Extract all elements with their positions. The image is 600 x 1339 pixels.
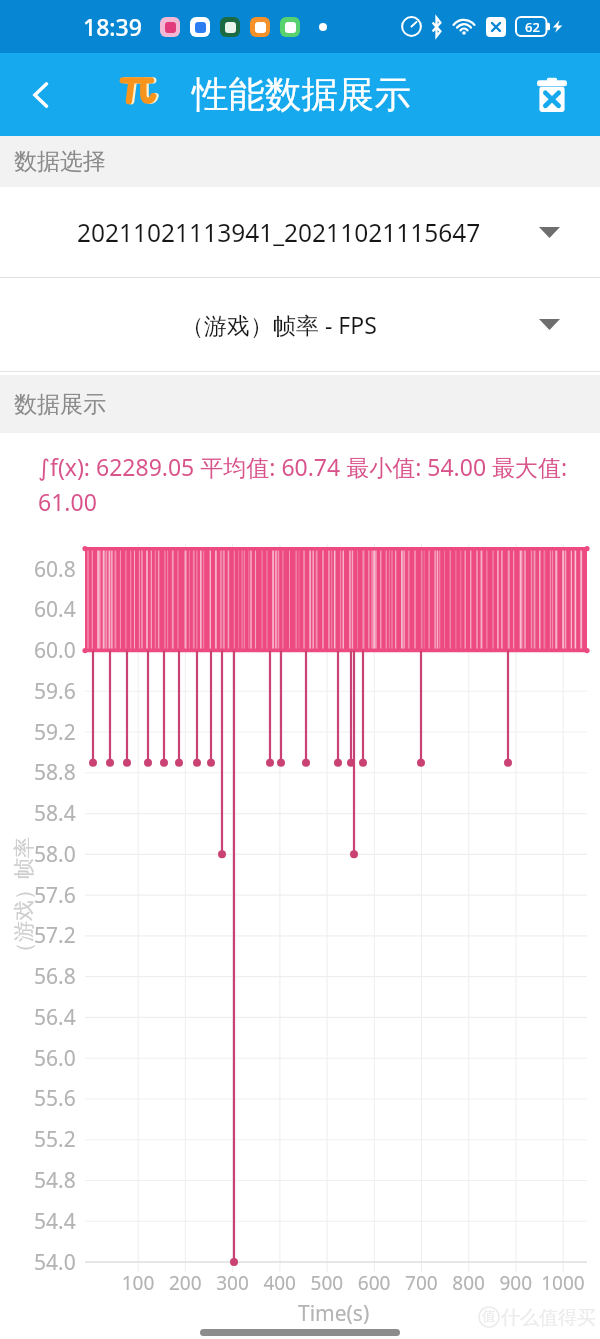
staticText: 数据选择 [14,147,106,176]
staticText: 18:39 [83,11,142,42]
button[interactable]: （游戏）帧率 - FPS [0,278,600,371]
button[interactable]: Back [10,64,72,126]
staticText: 数据展示 [14,390,106,419]
staticText: （游戏）帧率 - FPS [181,309,377,340]
staticText: 性能数据展示 [192,72,411,118]
button[interactable]: Delete [524,67,580,123]
button[interactable]: 20211021113941_20211021115647 [0,187,600,277]
staticText: 20211021113941_20211021115647 [77,216,481,249]
staticText: 62 [525,18,540,36]
staticText: ∫f(x): 62289.05 平均值: 60.74 最小值: 54.00 最大… [38,451,582,518]
